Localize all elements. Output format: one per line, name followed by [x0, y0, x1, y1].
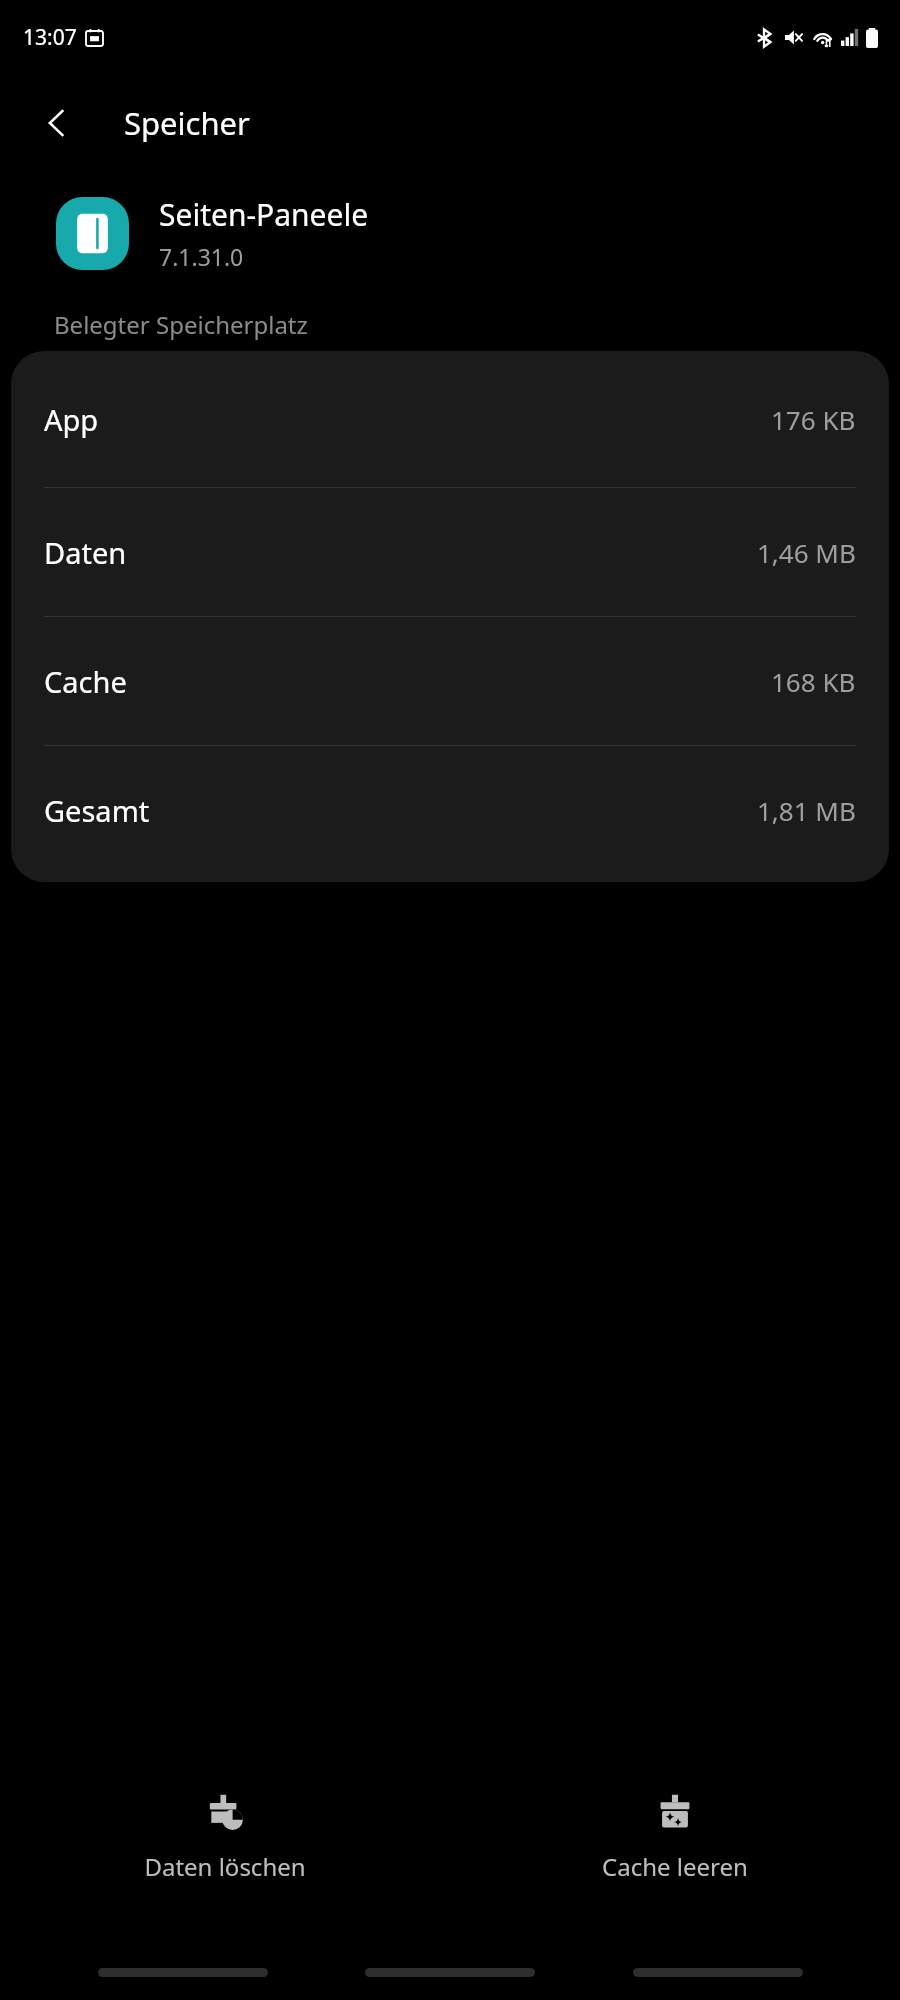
staticText: 13:07 — [23, 23, 77, 52]
staticText: App — [44, 400, 99, 439]
staticText: 176 KB — [771, 402, 856, 437]
button[interactable]: Cache — [11, 617, 889, 745]
staticText: Cache — [44, 662, 127, 701]
staticText: Speicher — [124, 102, 250, 144]
staticText: 168 KB — [771, 664, 856, 699]
staticText: 1,46 MB — [757, 535, 856, 570]
button[interactable]: Daten löschen — [0, 1794, 450, 1883]
staticText: Daten löschen — [144, 1850, 306, 1883]
staticText: Belegter Speicherplatz — [54, 308, 308, 341]
staticText: 7.1.31.0 — [159, 241, 244, 272]
staticText: Cache leeren — [602, 1850, 748, 1883]
button[interactable]: Zurück — [26, 92, 88, 154]
staticText: Daten — [44, 533, 127, 572]
button[interactable]: Seiten-Paneele — [56, 194, 844, 272]
staticText: 1,81 MB — [757, 793, 856, 828]
button[interactable]: Gesamt — [11, 746, 889, 874]
staticText: Seiten-Paneele — [159, 194, 369, 235]
button[interactable]: Startbildschirm — [365, 1968, 535, 1977]
button[interactable]: Daten — [11, 488, 889, 616]
button[interactable]: App — [11, 351, 889, 487]
button[interactable]: Cache leeren — [450, 1794, 900, 1883]
button[interactable]: Zurück — [633, 1968, 803, 1977]
staticText: Gesamt — [44, 791, 150, 830]
button[interactable]: Letzte Apps — [98, 1968, 268, 1977]
